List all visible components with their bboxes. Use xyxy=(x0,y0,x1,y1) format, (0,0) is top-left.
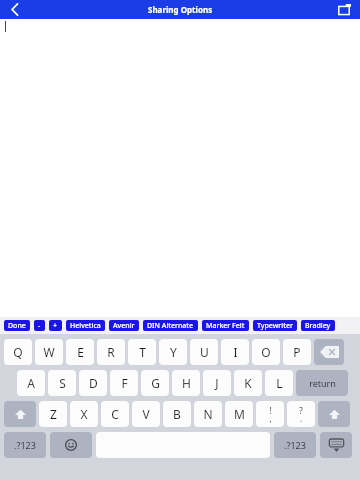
button[interactable]: M xyxy=(225,401,253,427)
button[interactable]: F xyxy=(110,370,138,396)
staticText: S xyxy=(59,375,66,391)
staticText: Sharing Options xyxy=(148,4,213,15)
button[interactable]: T xyxy=(128,339,156,365)
staticText: return xyxy=(309,377,336,389)
staticText: L xyxy=(276,375,283,391)
staticText: .?123 xyxy=(14,439,36,451)
staticText: - xyxy=(38,321,41,331)
staticText: A xyxy=(27,375,35,391)
staticText: K xyxy=(244,375,252,391)
button[interactable]: I xyxy=(221,339,249,365)
button[interactable]: L xyxy=(265,370,293,396)
button[interactable]: Done xyxy=(4,320,30,331)
button[interactable]: K xyxy=(234,370,262,396)
staticText: P xyxy=(293,344,301,360)
staticText: ! , xyxy=(269,405,272,424)
staticText: F xyxy=(121,375,128,391)
button[interactable]: U xyxy=(190,339,218,365)
button[interactable]: B xyxy=(163,401,191,427)
button[interactable]: D xyxy=(79,370,107,396)
staticText: ? . xyxy=(299,405,303,424)
button[interactable]: P xyxy=(283,339,311,365)
button[interactable]: ! , xyxy=(256,401,284,427)
button[interactable]: New document xyxy=(328,0,360,19)
staticText: Avenir xyxy=(113,321,135,331)
button[interactable]: Backspace xyxy=(314,339,344,365)
staticText: Typewriter xyxy=(257,321,293,331)
staticText: W xyxy=(43,344,55,360)
staticText: Y xyxy=(170,344,177,360)
button[interactable]: Avenir xyxy=(109,320,139,331)
button[interactable]: Emoji xyxy=(50,432,92,458)
button[interactable]: - xyxy=(34,320,45,331)
button[interactable]: Bradley xyxy=(301,320,335,331)
staticText: Marker Felt xyxy=(206,321,245,331)
button[interactable]: N xyxy=(194,401,222,427)
staticText: V xyxy=(142,406,150,422)
button[interactable]: DIN Alternate xyxy=(143,320,198,331)
staticText: E xyxy=(77,344,84,360)
button[interactable]: W xyxy=(35,339,63,365)
button[interactable]: return xyxy=(296,370,348,396)
button[interactable]: E xyxy=(66,339,94,365)
button[interactable]: A xyxy=(17,370,45,396)
button[interactable]: H xyxy=(172,370,200,396)
staticText: Helvetica xyxy=(70,321,101,331)
staticText: M xyxy=(234,406,245,422)
button[interactable]: O xyxy=(252,339,280,365)
button[interactable]: S xyxy=(48,370,76,396)
button[interactable]: .?123 xyxy=(274,432,316,458)
button[interactable]: Typewriter xyxy=(253,320,297,331)
staticText: T xyxy=(139,344,146,360)
staticText: N xyxy=(203,406,213,422)
staticText: Bradley xyxy=(305,321,331,331)
button[interactable]: C xyxy=(101,401,129,427)
button[interactable]: J xyxy=(203,370,231,396)
button[interactable]: Z xyxy=(39,401,67,427)
staticText: .?123 xyxy=(284,439,306,451)
staticText: DIN Alternate xyxy=(147,321,194,331)
staticText: Z xyxy=(50,406,57,422)
button[interactable]: Y xyxy=(159,339,187,365)
staticText: R xyxy=(107,344,115,360)
staticText: C xyxy=(111,406,119,422)
button[interactable]: + xyxy=(49,320,62,331)
staticText: D xyxy=(89,375,98,391)
staticText: Q xyxy=(13,344,23,360)
button[interactable]: G xyxy=(141,370,169,396)
staticText: G xyxy=(151,375,160,391)
button[interactable]: Marker Felt xyxy=(202,320,249,331)
button[interactable]: Q xyxy=(4,339,32,365)
staticText: U xyxy=(200,344,209,360)
button[interactable]: .?123 xyxy=(4,432,46,458)
staticText: Done xyxy=(8,321,26,331)
button[interactable]: Shift xyxy=(4,401,36,427)
staticText: B xyxy=(173,406,181,422)
button[interactable]: Helvetica xyxy=(66,320,105,331)
staticText: J xyxy=(215,375,219,391)
button[interactable]: ? . xyxy=(287,401,315,427)
staticText: + xyxy=(53,321,58,331)
button[interactable]: X xyxy=(70,401,98,427)
staticText: O xyxy=(261,344,271,360)
button[interactable]: Shift xyxy=(318,401,350,427)
staticText: H xyxy=(182,375,191,391)
staticText: X xyxy=(80,406,88,422)
button[interactable]: V xyxy=(132,401,160,427)
button[interactable]: Back xyxy=(0,0,30,19)
button[interactable]: R xyxy=(97,339,125,365)
staticText: I xyxy=(233,344,238,360)
button[interactable]: Hide keyboard xyxy=(320,432,352,458)
